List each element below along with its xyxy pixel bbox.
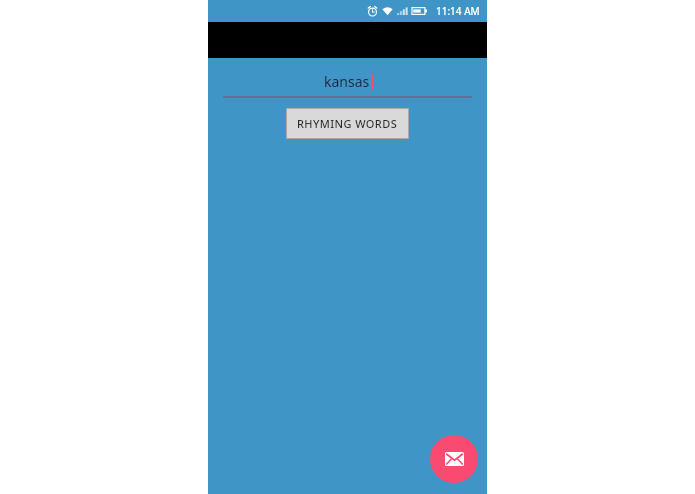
staticText: 11:14 AM [436,4,480,18]
button[interactable]: kansas [223,69,472,98]
button[interactable]: RHYMING WORDS [286,108,409,139]
staticText: RHYMING WORDS [297,116,398,131]
button[interactable]: Send email [430,435,478,483]
staticText: kansas [324,72,370,91]
